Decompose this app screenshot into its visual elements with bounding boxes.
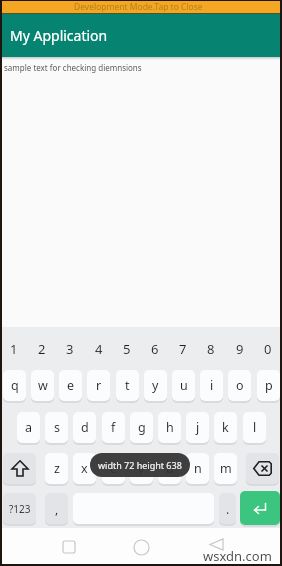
staticText: wsxdn.com <box>203 547 272 565</box>
staticText: w <box>38 377 48 394</box>
staticText: e <box>67 377 75 394</box>
staticText: j <box>196 419 200 436</box>
button[interactable]: 1 <box>0 340 28 358</box>
button[interactable]: y <box>144 370 167 401</box>
staticText: l <box>253 419 257 436</box>
staticText: n <box>194 460 202 477</box>
staticText: 5 <box>123 340 131 358</box>
staticText: h <box>166 419 174 436</box>
button[interactable]: 7 <box>169 340 197 358</box>
staticText: s <box>54 419 60 436</box>
staticText: o <box>236 377 244 394</box>
staticText: 1 <box>10 340 18 358</box>
staticText: sample text for checking diemnsions <box>4 62 142 73</box>
button[interactable]: u <box>172 370 195 401</box>
staticText: ?123 <box>9 502 31 516</box>
button[interactable]: s <box>45 412 68 443</box>
button[interactable]: l <box>243 412 266 443</box>
staticText: Development Mode.Tap to Close <box>74 1 203 13</box>
staticText: i <box>210 377 214 394</box>
button[interactable]: My Application <box>0 14 282 57</box>
staticText: , <box>55 501 59 517</box>
staticText: d <box>81 419 89 436</box>
button[interactable]: 5 <box>113 340 141 358</box>
staticText: My Application <box>10 26 108 45</box>
button[interactable]: w <box>31 370 54 401</box>
staticText: c <box>110 460 117 477</box>
staticText: a <box>25 419 33 436</box>
button[interactable]: . <box>219 493 236 524</box>
button[interactable]: p <box>257 370 280 401</box>
button[interactable]: 6 <box>141 340 169 358</box>
button[interactable]: f <box>102 412 125 443</box>
button[interactable] <box>208 536 225 553</box>
staticText: 2 <box>38 340 46 358</box>
staticText: y <box>152 377 159 394</box>
button[interactable]: , <box>45 493 68 524</box>
staticText: width 72 height 638 <box>98 459 182 471</box>
button[interactable] <box>3 453 36 484</box>
button[interactable] <box>240 491 280 525</box>
button[interactable]: h <box>158 412 181 443</box>
staticText: 7 <box>179 340 187 358</box>
staticText: q <box>11 377 19 394</box>
staticText: . <box>226 501 230 517</box>
button[interactable] <box>132 538 150 556</box>
button[interactable]: v <box>130 453 153 484</box>
button[interactable]: 8 <box>197 340 225 358</box>
button[interactable]: m <box>214 453 237 484</box>
button[interactable]: z <box>45 453 68 484</box>
staticText: v <box>138 460 145 477</box>
staticText: 8 <box>207 340 215 358</box>
button[interactable]: g <box>130 412 153 443</box>
button[interactable]: j <box>186 412 209 443</box>
staticText: 9 <box>236 340 244 358</box>
staticText: r <box>96 377 102 394</box>
button[interactable]: 3 <box>56 340 84 358</box>
button[interactable]: ?123 <box>3 493 36 524</box>
button[interactable]: e <box>59 370 82 401</box>
staticText: 3 <box>66 340 74 358</box>
button[interactable]: t <box>116 370 139 401</box>
staticText: 0 <box>264 340 272 358</box>
staticText: m <box>220 460 232 477</box>
button[interactable]: i <box>200 370 223 401</box>
button[interactable]: 9 <box>226 340 254 358</box>
button[interactable] <box>60 538 78 556</box>
button[interactable]: r <box>87 370 110 401</box>
button[interactable]: 4 <box>85 340 113 358</box>
staticText: p <box>265 377 273 394</box>
staticText: 4 <box>95 340 103 358</box>
staticText: f <box>111 419 116 436</box>
button[interactable]: 2 <box>28 340 56 358</box>
staticText: g <box>138 419 146 436</box>
button[interactable]: c <box>102 453 125 484</box>
button[interactable]: a <box>17 412 40 443</box>
staticText: u <box>180 377 188 394</box>
button[interactable]: k <box>214 412 237 443</box>
button[interactable] <box>246 453 279 484</box>
staticText: b <box>166 460 174 477</box>
button[interactable]: 0 <box>254 340 282 358</box>
staticText: k <box>222 419 229 436</box>
staticText: z <box>54 460 60 477</box>
button[interactable]: q <box>3 370 26 401</box>
staticText: t <box>125 377 130 394</box>
staticText: 6 <box>151 340 159 358</box>
button[interactable]: o <box>228 370 251 401</box>
staticText: x <box>81 460 88 477</box>
button[interactable]: x <box>73 453 96 484</box>
button[interactable]: b <box>158 453 181 484</box>
button[interactable]: n <box>186 453 209 484</box>
button[interactable]: d <box>73 412 96 443</box>
